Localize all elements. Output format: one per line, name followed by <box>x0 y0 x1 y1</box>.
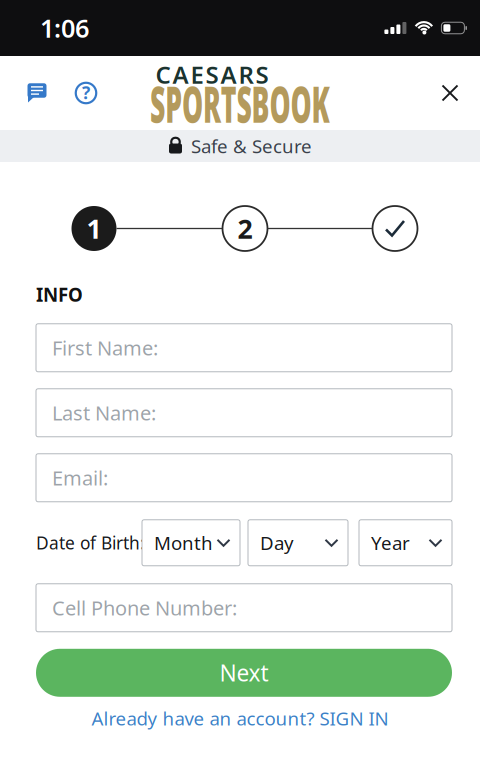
staticText: C A E S A R S <box>155 59 268 90</box>
staticText: ? <box>82 81 90 104</box>
staticText: Day <box>260 530 294 555</box>
staticText: Last Name: <box>52 399 156 426</box>
button[interactable]: Year <box>359 520 452 566</box>
button[interactable]: Last Name: <box>36 389 452 437</box>
button[interactable]: Next <box>36 649 452 697</box>
staticText: Already have an account? SIGN IN <box>91 706 388 731</box>
staticText: First Name: <box>52 334 158 361</box>
button[interactable]: Live chat <box>20 76 54 110</box>
staticText: Email: <box>52 464 108 491</box>
button[interactable]: Day <box>248 520 348 566</box>
staticText: 1 <box>86 211 101 246</box>
button[interactable]: Cell Phone Number: <box>36 584 452 632</box>
button[interactable]: Close <box>433 76 467 110</box>
staticText: Next <box>219 658 268 688</box>
staticText: Month <box>154 530 213 555</box>
staticText: SPORTSBOOK <box>73 71 406 136</box>
staticText: 2 <box>237 211 252 246</box>
staticText: Date of Birth: <box>36 531 145 554</box>
button[interactable]: Already have an account? SIGN IN <box>91 706 388 731</box>
staticText: Safe & Secure <box>191 134 312 158</box>
button[interactable]: First Name: <box>36 324 452 372</box>
button[interactable]: Month <box>142 520 240 566</box>
staticText: Cell Phone Number: <box>52 594 237 621</box>
staticText: INFO <box>36 282 83 307</box>
staticText: Year <box>371 530 410 555</box>
button[interactable]: Help <box>69 76 103 110</box>
staticText: 1:06 <box>40 11 89 45</box>
button[interactable]: Email: <box>36 454 452 502</box>
